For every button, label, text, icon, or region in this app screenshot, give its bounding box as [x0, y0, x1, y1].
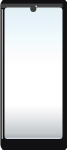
button[interactable]: Phone device preview: [0, 0, 67, 150]
